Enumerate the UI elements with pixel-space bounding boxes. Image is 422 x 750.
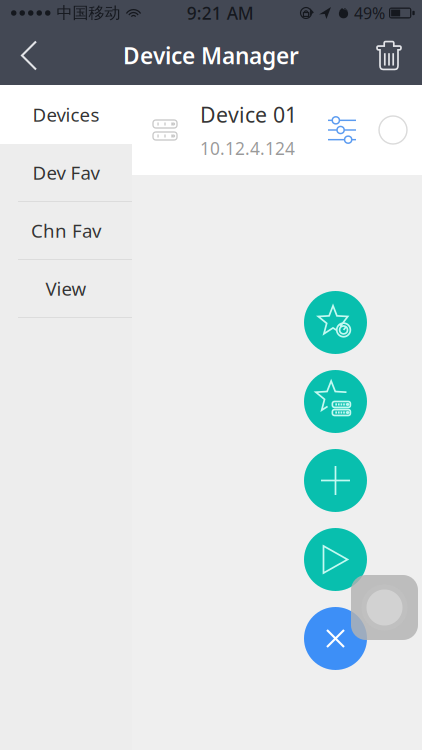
staticText: 10.12.4.124 (200, 137, 295, 160)
staticText: 49% (354, 2, 385, 24)
button[interactable]: Delete (356, 26, 422, 85)
staticText: 9:21 AM (187, 1, 254, 24)
button[interactable]: Dev Fav (0, 144, 132, 202)
staticText: Devices (32, 102, 99, 127)
button[interactable]: Back (0, 26, 58, 85)
staticText: View (45, 276, 86, 301)
staticText: Device Manager (123, 40, 299, 70)
button[interactable]: Play (304, 528, 367, 591)
button[interactable]: Close (304, 607, 367, 670)
button[interactable]: Add (304, 449, 367, 512)
staticText: Chn Fav (31, 218, 101, 243)
button[interactable]: Chn Fav (0, 202, 132, 260)
button[interactable]: Device 01 (132, 85, 422, 175)
staticText: Dev Fav (32, 160, 99, 185)
button[interactable]: View (0, 260, 132, 318)
button[interactable]: Add favourite device (304, 370, 367, 433)
button[interactable]: Add favourite camera (304, 291, 367, 354)
staticText: Device 01 (200, 100, 297, 129)
button[interactable]: Devices (0, 85, 132, 144)
staticText: 中国移动 (56, 3, 120, 23)
